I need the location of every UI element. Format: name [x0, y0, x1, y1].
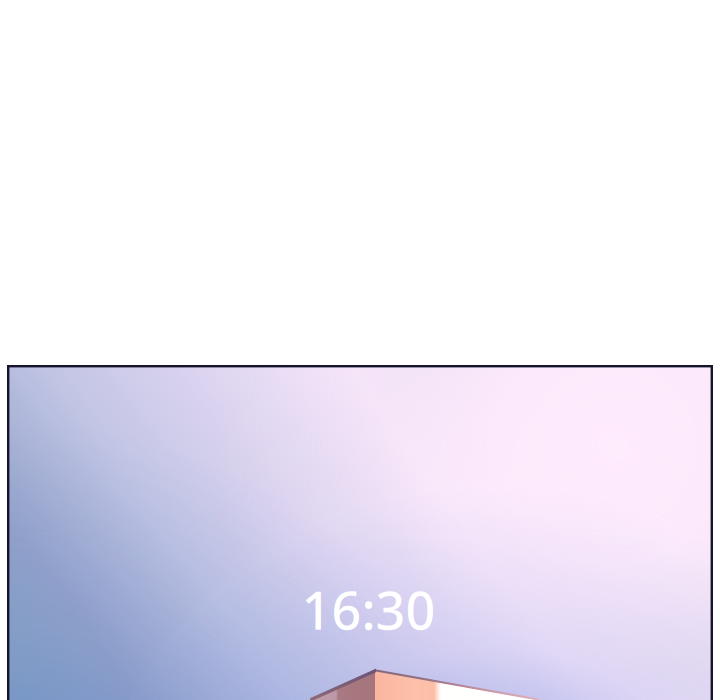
staticText: 16:30 — [301, 575, 435, 644]
